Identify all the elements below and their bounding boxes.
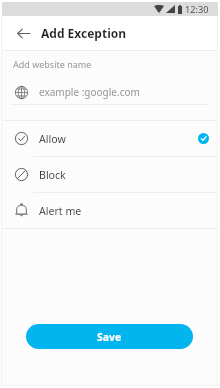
button[interactable]: Alert me [2,193,218,228]
staticText: 12:30 [185,3,209,16]
staticText: Block [39,168,66,182]
button[interactable]: Block [2,157,218,192]
button[interactable]: Back [10,20,36,46]
staticText: example :google.com [39,85,140,99]
staticText: Save [97,330,122,344]
staticText: Add website name [13,58,92,70]
button[interactable]: example :google.com [2,83,218,101]
staticText: Alert me [39,204,82,218]
button[interactable]: Allow [2,121,218,156]
staticText: Allow [39,132,66,146]
staticText: Add Exception [41,25,127,41]
button[interactable]: Save [26,324,193,349]
